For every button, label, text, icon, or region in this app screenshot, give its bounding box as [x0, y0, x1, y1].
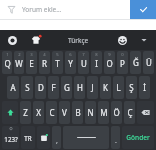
button[interactable]: D: [35, 76, 46, 99]
staticText: Y: [68, 58, 73, 69]
button[interactable]: Shift: [2, 101, 18, 124]
button[interactable]: 123?: [2, 126, 19, 149]
staticText: 0: [121, 52, 124, 58]
staticText: A: [10, 82, 16, 93]
staticText: 9: [108, 52, 111, 58]
button[interactable]: 8: [91, 51, 102, 74]
button[interactable]: Ğ: [130, 51, 141, 74]
button[interactable]: İ: [139, 76, 150, 99]
button[interactable]: TR: [21, 126, 35, 149]
button[interactable]: Ç: [124, 101, 135, 124]
staticText: TR: [24, 134, 32, 142]
staticText: C: [49, 107, 55, 118]
button[interactable]: Backspace: [137, 101, 154, 124]
staticText: Ö: [113, 107, 120, 118]
button[interactable]: A: [7, 76, 19, 99]
button[interactable]: X: [33, 101, 44, 124]
staticText: T: [55, 58, 60, 69]
button[interactable]: 5: [52, 51, 63, 74]
staticText: W: [15, 58, 23, 69]
staticText: Yorum ekle…: [22, 5, 62, 14]
staticText: Ş: [129, 82, 134, 93]
staticText: .: [115, 136, 117, 146]
button[interactable]: Space: [63, 126, 109, 149]
button[interactable]: Gönder: [122, 126, 154, 149]
button[interactable]: 4: [39, 51, 50, 74]
button[interactable]: Filter: [0, 0, 22, 19]
button[interactable]: 6: [65, 51, 76, 74]
staticText: L: [116, 82, 121, 93]
staticText: K: [103, 82, 108, 93]
staticText: D: [38, 82, 44, 93]
staticText: R: [42, 58, 47, 69]
button[interactable]: Send comment: [130, 0, 156, 19]
staticText: 2: [18, 52, 21, 58]
staticText: Türkçe: [68, 36, 89, 45]
button[interactable]: J: [87, 76, 98, 99]
staticText: F: [51, 82, 56, 93]
staticText: X: [36, 107, 41, 118]
button[interactable]: Yorum ekle…: [22, 0, 130, 19]
button[interactable]: 1: [2, 51, 12, 74]
button[interactable]: Google search: [3, 31, 21, 49]
staticText: Q: [4, 58, 11, 69]
staticText: İ: [143, 82, 146, 93]
staticText: J: [91, 82, 94, 93]
button[interactable]: 7: [78, 51, 89, 74]
staticText: B: [75, 107, 81, 118]
staticText: O: [106, 58, 113, 69]
button[interactable]: L: [113, 76, 124, 99]
staticText: Ğ: [133, 57, 139, 68]
button[interactable]: N: [85, 101, 96, 124]
button[interactable]: S: [21, 76, 33, 99]
button[interactable]: Emoji keyboard: [37, 126, 50, 149]
button[interactable]: Close suggestions: [135, 31, 153, 49]
staticText: Ü: [146, 57, 152, 68]
staticText: I: [95, 58, 98, 69]
button[interactable]: 0: [117, 51, 128, 74]
button[interactable]: H: [74, 76, 85, 99]
staticText: 3: [30, 52, 33, 58]
staticText: Ç: [127, 107, 133, 118]
staticText: U: [81, 58, 87, 69]
staticText: 8: [95, 52, 98, 58]
staticText: G: [64, 82, 70, 93]
staticText: Z: [23, 107, 28, 118]
button[interactable]: .: [111, 126, 120, 149]
button[interactable]: F: [48, 76, 59, 99]
button[interactable]: Ü: [143, 51, 154, 74]
staticText: 123?: [4, 135, 18, 143]
button[interactable]: ,: [52, 126, 61, 149]
button[interactable]: B: [72, 101, 83, 124]
button[interactable]: C: [46, 101, 57, 124]
button[interactable]: Stickers: [27, 31, 45, 49]
staticText: Gönder: [126, 133, 150, 142]
staticText: 1: [6, 52, 9, 58]
button[interactable]: Ö: [111, 101, 122, 124]
button[interactable]: Z: [20, 101, 31, 124]
button[interactable]: 2: [14, 51, 24, 74]
staticText: 5: [56, 52, 59, 58]
staticText: ,: [56, 136, 58, 146]
button[interactable]: M: [98, 101, 109, 124]
staticText: 7: [82, 52, 85, 58]
staticText: N: [87, 107, 94, 118]
button[interactable]: 3: [26, 51, 37, 74]
staticText: V: [62, 107, 67, 118]
staticText: H: [77, 82, 83, 93]
button[interactable]: Türkçe: [68, 36, 89, 45]
staticText: 4: [43, 52, 46, 58]
button[interactable]: K: [100, 76, 111, 99]
button[interactable]: V: [59, 101, 70, 124]
button[interactable]: Emoji: [113, 31, 131, 49]
staticText: 6: [69, 52, 72, 58]
button[interactable]: Ş: [126, 76, 137, 99]
staticText: S: [25, 82, 30, 93]
staticText: E: [29, 58, 34, 69]
staticText: M: [100, 107, 108, 118]
staticText: P: [120, 58, 125, 69]
button[interactable]: 9: [104, 51, 115, 74]
button[interactable]: G: [61, 76, 72, 99]
